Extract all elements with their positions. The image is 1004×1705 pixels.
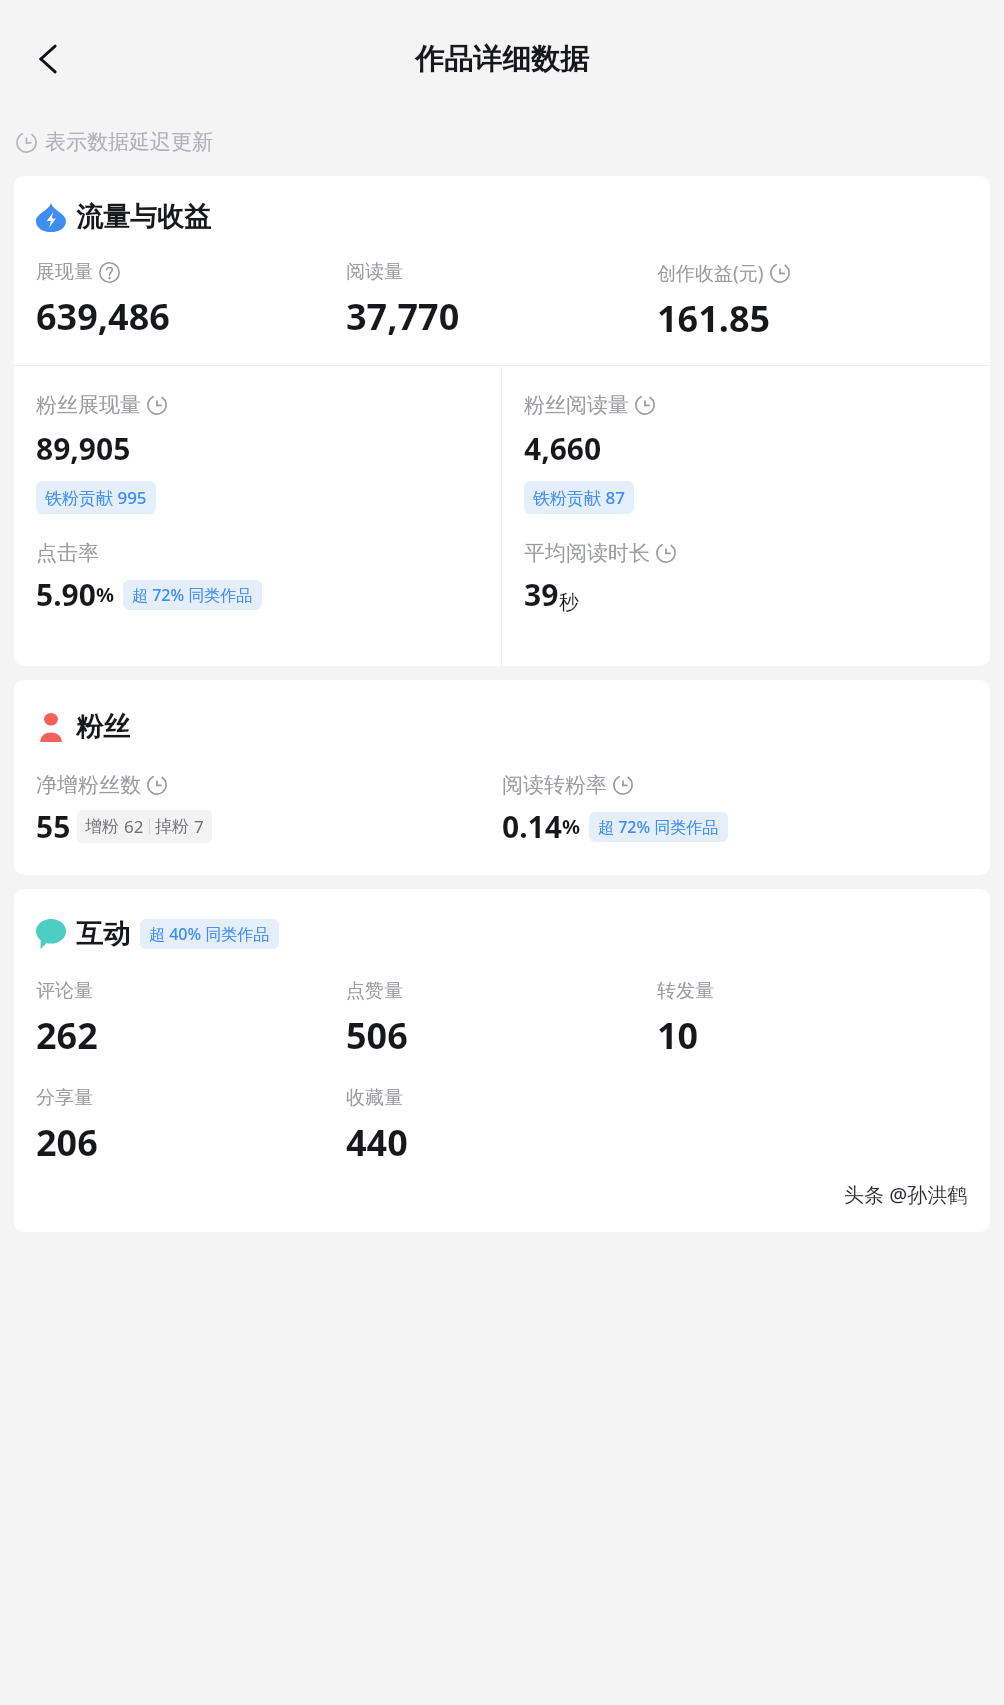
staticText: 639,486 <box>36 292 170 341</box>
staticText: 粉丝阅读量 <box>524 392 629 418</box>
staticText: 0.14 <box>502 806 562 847</box>
staticText: 秒 <box>559 590 579 615</box>
staticText: 铁粉贡献 87 <box>533 486 625 509</box>
staticText: 粉丝展现量 <box>36 392 141 418</box>
staticText: 62 <box>124 815 144 838</box>
staticText: 206 <box>36 1118 98 1167</box>
staticText: 超 40% 同类作品 <box>149 923 270 945</box>
button[interactable]: 超 72% 同类作品 <box>589 812 728 842</box>
staticText: 39 <box>524 574 559 615</box>
staticText: 表示数据延迟更新 <box>45 129 213 155</box>
staticText: % <box>562 813 581 840</box>
staticText: 超 72% 同类作品 <box>598 816 719 838</box>
staticText: 收藏量 <box>346 1086 403 1110</box>
staticText: 262 <box>36 1011 98 1060</box>
staticText: 89,905 <box>36 428 131 469</box>
staticText: 5.90 <box>36 574 96 615</box>
staticText: 粉丝 <box>76 710 130 744</box>
staticText: 7 <box>194 815 204 838</box>
staticText: 铁粉贡献 995 <box>45 486 147 509</box>
button[interactable]: 铁粉贡献 995 <box>36 481 156 514</box>
staticText: 作品详细数据 <box>415 41 589 78</box>
staticText: 10 <box>657 1011 699 1060</box>
staticText: 161.85 <box>657 294 771 343</box>
button[interactable]: Back <box>18 28 80 90</box>
staticText: 平均阅读时长 <box>524 540 650 566</box>
staticText: 55 <box>36 806 71 847</box>
staticText: 净增粉丝数 <box>36 772 141 798</box>
staticText: 流量与收益 <box>76 200 211 234</box>
staticText: 互动 <box>76 917 130 951</box>
staticText: 创作收益(元) <box>657 260 764 286</box>
staticText: 506 <box>346 1011 408 1060</box>
button[interactable]: 增粉 <box>77 810 212 843</box>
staticText: 评论量 <box>36 979 93 1003</box>
staticText: 增粉 <box>85 816 119 837</box>
staticText: 440 <box>346 1118 408 1167</box>
staticText: 分享量 <box>36 1086 93 1110</box>
staticText: % <box>96 581 115 608</box>
staticText: 展现量 <box>36 260 93 284</box>
staticText: 阅读量 <box>346 260 403 284</box>
button[interactable]: 铁粉贡献 87 <box>524 481 634 514</box>
staticText: 超 72% 同类作品 <box>132 584 253 606</box>
staticText: 点击率 <box>36 540 99 566</box>
button[interactable]: 超 40% 同类作品 <box>140 919 279 949</box>
staticText: 点赞量 <box>346 979 403 1003</box>
staticText: 转发量 <box>657 979 714 1003</box>
staticText: 头条 @孙洪鹤 <box>844 1181 968 1208</box>
staticText: 4,660 <box>524 428 602 469</box>
staticText: 37,770 <box>346 292 460 341</box>
staticText: 阅读转粉率 <box>502 772 607 798</box>
staticText: 掉粉 <box>155 816 189 837</box>
button[interactable]: 超 72% 同类作品 <box>123 580 262 610</box>
